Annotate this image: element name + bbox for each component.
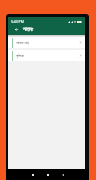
button[interactable]: Recents: [29, 171, 37, 179]
staticText: 5:43 PM: [11, 19, 24, 24]
button[interactable]: Back: [59, 171, 67, 179]
button[interactable]: Back: [12, 25, 21, 34]
button[interactable]: আমার প্রশ্ন: [8, 37, 85, 48]
staticText: সাহায্য: [23, 27, 34, 32]
button[interactable]: Home: [44, 171, 52, 179]
staticText: ভূমিকা: [16, 54, 24, 58]
staticText: আমার প্রশ্ন: [16, 40, 29, 45]
button[interactable]: ভূমিকা: [8, 50, 85, 61]
